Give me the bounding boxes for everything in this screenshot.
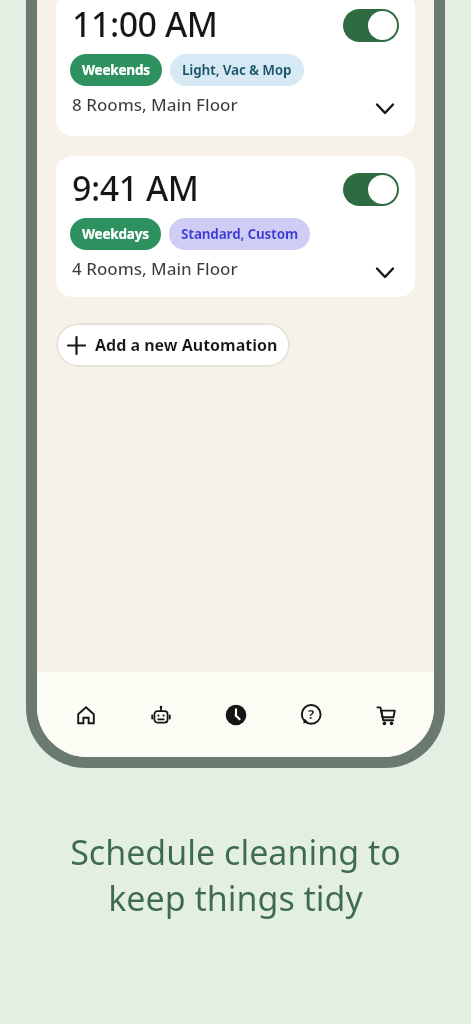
button[interactable]: [343, 173, 399, 206]
staticText: Add a new Automation: [95, 334, 278, 356]
staticText: 8 Rooms, Main Floor: [72, 93, 238, 116]
button[interactable]: Standard, Custom: [169, 218, 310, 250]
staticText: Weekdays: [82, 225, 149, 243]
button[interactable]: 9:41 AM: [56, 156, 415, 297]
button[interactable]: ?: [273, 687, 348, 743]
button[interactable]: [123, 687, 198, 743]
button[interactable]: Weekdays: [70, 218, 161, 250]
staticText: 11:00 AM: [72, 1, 218, 47]
staticText: Schedule cleaning to: [70, 829, 401, 875]
button[interactable]: Light, Vac & Mop: [170, 54, 304, 86]
button[interactable]: [348, 687, 423, 743]
staticText: Weekends: [82, 61, 150, 79]
staticText: Light, Vac & Mop: [182, 61, 292, 79]
button[interactable]: [48, 687, 123, 743]
staticText: ?: [308, 705, 315, 723]
button[interactable]: [198, 687, 273, 743]
button[interactable]: [343, 9, 399, 42]
staticText: 9:41 AM: [72, 165, 199, 211]
staticText: keep things tidy: [108, 875, 363, 921]
button[interactable]: Weekends: [70, 54, 162, 86]
button[interactable]: Add a new Automation: [56, 323, 290, 367]
staticText: 4 Rooms, Main Floor: [72, 257, 238, 280]
staticText: Standard, Custom: [181, 225, 298, 243]
button[interactable]: 11:00 AM: [56, 0, 415, 136]
